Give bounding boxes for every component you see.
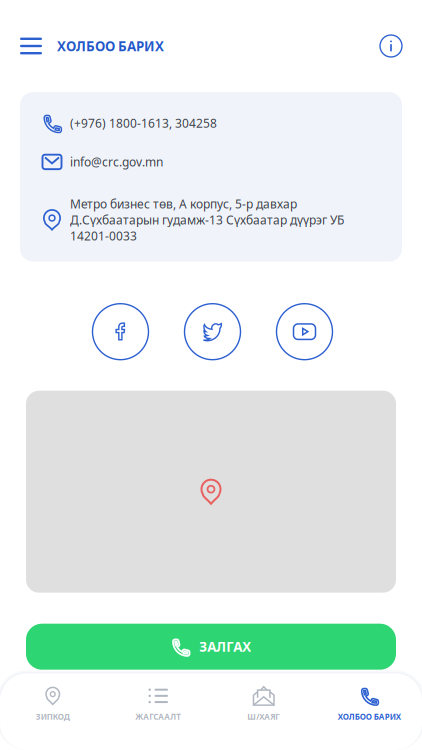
button[interactable]: Menu <box>20 24 57 68</box>
staticText: info@crc.gov.mn <box>70 154 163 170</box>
button[interactable]: ХОЛБОО БАРИХ <box>316 673 422 750</box>
staticText: ХОЛБОО БАРИХ <box>57 37 164 55</box>
button[interactable]: Twitter <box>184 304 240 360</box>
staticText: ЗИПКОД <box>36 711 70 722</box>
staticText: (+976) 1800-1613, 304258 <box>70 115 217 131</box>
staticText: ЖАГСААЛТ <box>135 711 181 722</box>
staticText: 14201-0033 <box>70 228 137 244</box>
button[interactable]: YouTube <box>276 304 332 360</box>
staticText: ЗАЛГАХ <box>199 638 251 655</box>
button[interactable]: ЗИПКОД <box>0 673 105 750</box>
button[interactable]: ЗАЛГАХ <box>26 624 396 670</box>
staticText: ХОЛБОО БАРИХ <box>338 711 401 722</box>
staticText: Д.Сүхбаатарын гудамж-13 Сүхбаатар дүүрэг… <box>70 212 344 228</box>
button[interactable]: ЖАГСААЛТ <box>105 673 211 750</box>
button[interactable]: Ш/ХАЯГ <box>211 673 316 750</box>
button[interactable]: Facebook <box>92 304 148 360</box>
button[interactable]: Information <box>372 24 402 68</box>
staticText: Метро бизнес төв, А корпус, 5-р давхар <box>70 196 297 212</box>
staticText: Ш/ХАЯГ <box>247 711 280 722</box>
